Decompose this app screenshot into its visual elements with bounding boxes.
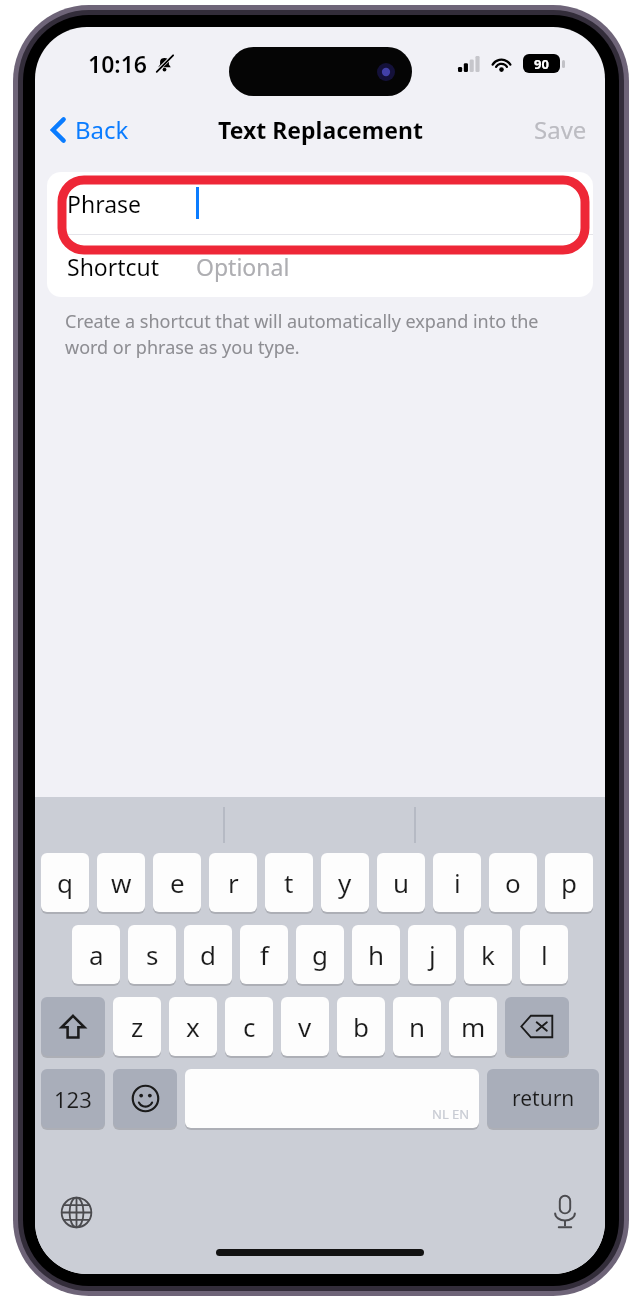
button[interactable]: Space [185,1069,479,1128]
staticText: Save [534,113,587,146]
staticText: h [368,937,385,972]
button[interactable]: return [487,1069,599,1128]
staticText: i [454,865,461,900]
button[interactable]: d [184,925,232,984]
button[interactable]: Phrase [47,172,593,234]
staticText: Back [75,113,129,146]
button[interactable]: y [321,853,369,912]
button[interactable]: p [545,853,593,912]
staticText: j [429,937,436,972]
staticText: return [512,1084,575,1113]
staticText: Create a shortcut that will automaticall… [65,309,539,359]
button[interactable]: o [489,853,537,912]
button[interactable]: h [352,925,400,984]
staticText: l [541,937,548,972]
staticText: Optional [196,251,290,282]
staticText: u [393,865,410,900]
staticText: p [561,865,577,900]
button[interactable]: 123 [41,1069,105,1128]
staticText: q [57,865,73,900]
staticText: 10:16 [88,48,147,79]
button[interactable]: s [128,925,176,984]
staticText: 90 [534,55,549,73]
staticText: g [312,937,328,972]
staticText: NL EN [432,1105,470,1123]
button[interactable]: q [41,853,89,912]
staticText: v [298,1009,312,1044]
staticText: k [481,937,495,972]
button[interactable]: e [153,853,201,912]
staticText: m [461,1009,486,1044]
button[interactable]: Back [35,105,141,154]
staticText: r [228,865,239,900]
button[interactable]: c [225,997,273,1056]
button[interactable]: v [281,997,329,1056]
button[interactable]: g [296,925,344,984]
button[interactable]: Shift [41,997,105,1056]
button[interactable]: Save [516,103,605,156]
staticText: n [409,1009,426,1044]
button[interactable]: b [337,997,385,1056]
staticText: x [186,1009,200,1044]
staticText: a [89,937,104,972]
staticText: o [505,865,521,900]
button[interactable]: t [265,853,313,912]
staticText: 123 [54,1084,92,1114]
staticText: Phrase [67,188,142,219]
button[interactable]: r [209,853,257,912]
button[interactable]: l [520,925,568,984]
button[interactable]: i [433,853,481,912]
button[interactable]: n [393,997,441,1056]
staticText: b [353,1009,369,1044]
staticText: t [284,865,294,900]
button[interactable]: f [240,925,288,984]
staticText: s [146,937,159,972]
button[interactable]: Emoji [113,1069,177,1128]
button[interactable]: Shortcut [47,235,593,297]
staticText: Shortcut [67,251,160,282]
button[interactable]: Dictate [544,1187,586,1237]
button[interactable]: k [464,925,512,984]
staticText: d [200,937,216,972]
button[interactable]: a [72,925,120,984]
staticText: Text Replacement [218,114,423,145]
button[interactable]: Backspace [505,997,569,1056]
staticText: e [170,865,185,900]
button[interactable]: Change keyboard [52,1188,101,1237]
staticText: f [260,937,269,972]
button[interactable]: w [97,853,145,912]
button[interactable]: z [113,997,161,1056]
staticText: w [111,865,132,900]
button[interactable]: j [408,925,456,984]
button[interactable]: u [377,853,425,912]
staticText: z [131,1009,144,1044]
button[interactable]: x [169,997,217,1056]
button[interactable]: m [449,997,497,1056]
staticText: y [338,865,352,900]
staticText: c [243,1009,256,1044]
